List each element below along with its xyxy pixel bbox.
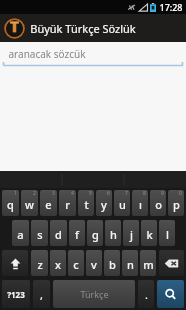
staticText: f: [75, 227, 79, 242]
staticText: j: [130, 227, 133, 242]
staticText: 9: [161, 190, 164, 197]
button[interactable]: a: [12, 220, 29, 246]
button[interactable]: n: [122, 250, 138, 276]
button[interactable]: b: [104, 250, 120, 276]
button[interactable]: d: [50, 220, 67, 246]
staticText: d: [55, 227, 62, 242]
staticText: q: [7, 197, 14, 212]
button[interactable]: Period: [138, 280, 154, 308]
staticText: p: [173, 197, 180, 212]
staticText: 6: [107, 190, 110, 197]
staticText: 1: [14, 190, 17, 197]
button[interactable]: v: [86, 250, 102, 276]
staticText: 4: [71, 190, 74, 197]
button[interactable]: e: [40, 190, 57, 216]
button[interactable]: s: [31, 220, 48, 246]
staticText: u: [119, 197, 126, 212]
button[interactable]: u: [114, 190, 130, 216]
staticText: n: [127, 257, 134, 272]
button[interactable]: t: [78, 190, 94, 216]
button[interactable]: o: [150, 190, 166, 216]
staticText: aranacak sözcük: [8, 47, 86, 61]
button[interactable]: m: [140, 250, 156, 276]
staticText: 7: [125, 190, 128, 197]
staticText: l: [166, 227, 169, 242]
staticText: 8: [143, 190, 146, 197]
button[interactable]: k: [141, 220, 157, 246]
button[interactable]: j: [123, 220, 139, 246]
button[interactable]: f: [69, 220, 85, 246]
staticText: ,: [40, 287, 43, 302]
button[interactable]: r: [59, 190, 76, 216]
button[interactable]: x: [50, 250, 66, 276]
staticText: r: [65, 197, 70, 212]
staticText: k: [146, 227, 153, 242]
button[interactable]: Search: [157, 280, 184, 308]
button[interactable]: Shift: [2, 250, 28, 276]
button[interactable]: c: [68, 250, 84, 276]
button[interactable]: l: [159, 220, 175, 246]
staticText: c: [73, 257, 79, 272]
button[interactable]: g: [87, 220, 103, 246]
staticText: z: [37, 257, 43, 272]
staticText: e: [45, 197, 52, 212]
staticText: 17:28: [159, 1, 183, 13]
staticText: g: [92, 227, 99, 242]
button[interactable]: ı: [132, 190, 148, 216]
staticText: m: [143, 257, 154, 272]
button[interactable]: q: [2, 190, 19, 216]
button[interactable]: aranacak sözcük: [0, 42, 186, 68]
staticText: 2: [33, 190, 36, 197]
staticText: a: [17, 227, 24, 242]
button[interactable]: w: [21, 190, 38, 216]
staticText: s: [37, 227, 43, 242]
staticText: .: [145, 287, 148, 302]
staticText: w: [25, 197, 34, 212]
button[interactable]: Symbols: [2, 280, 30, 308]
staticText: v: [91, 257, 97, 272]
staticText: 3: [52, 190, 55, 197]
staticText: y: [101, 197, 107, 212]
button[interactable]: p: [168, 190, 184, 216]
button[interactable]: Comma: [33, 280, 50, 308]
staticText: t: [84, 197, 89, 212]
button[interactable]: Büyük Türkçe Sözlük: [0, 14, 186, 42]
button[interactable]: Backspace: [159, 250, 184, 276]
staticText: ?123: [7, 289, 25, 300]
staticText: 5: [89, 190, 92, 197]
button[interactable]: h: [105, 220, 121, 246]
staticText: ı: [139, 197, 142, 212]
staticText: h: [110, 227, 117, 242]
button[interactable]: Türkçe: [53, 280, 135, 308]
staticText: Türkçe: [80, 288, 109, 300]
staticText: b: [109, 257, 116, 272]
staticText: x: [55, 257, 61, 272]
button[interactable]: z: [31, 250, 48, 276]
staticText: o: [155, 197, 162, 212]
staticText: 0: [179, 190, 182, 197]
button[interactable]: y: [96, 190, 112, 216]
staticText: Büyük Türkçe Sözlük: [30, 21, 136, 36]
